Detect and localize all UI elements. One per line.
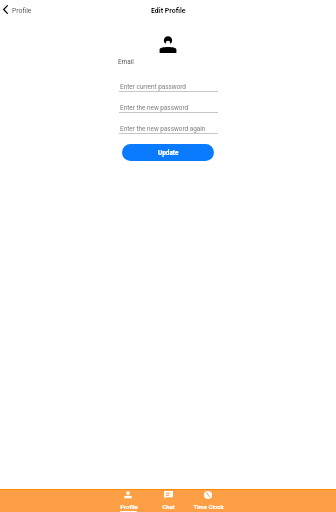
staticText: Time Clock bbox=[193, 503, 224, 510]
button[interactable]: Enter current password bbox=[119, 82, 218, 92]
staticText: Email bbox=[118, 58, 134, 66]
staticText: Profile bbox=[12, 7, 32, 15]
other: Time Clock bbox=[204, 491, 212, 499]
button[interactable]: Enter the new password again bbox=[119, 124, 218, 134]
staticText: Profile bbox=[120, 503, 138, 510]
button[interactable]: Enter the new password bbox=[119, 103, 218, 113]
other: Profile photo bbox=[159, 35, 177, 53]
button[interactable]: Chat bbox=[148, 490, 189, 512]
button[interactable]: Back to Profile bbox=[1, 3, 34, 18]
staticText: Enter the new password bbox=[120, 104, 189, 112]
staticText: Enter the new password again bbox=[120, 125, 206, 133]
button[interactable]: Time Clock bbox=[188, 490, 229, 512]
other: Chat bbox=[164, 491, 173, 499]
staticText: Edit Profile bbox=[151, 7, 186, 15]
other: Profile bbox=[124, 491, 132, 498]
button[interactable]: Update bbox=[122, 144, 214, 161]
staticText: Update bbox=[158, 149, 179, 157]
button[interactable]: Profile bbox=[108, 490, 149, 512]
staticText: Chat bbox=[162, 503, 175, 510]
staticText: Enter current password bbox=[120, 83, 186, 91]
